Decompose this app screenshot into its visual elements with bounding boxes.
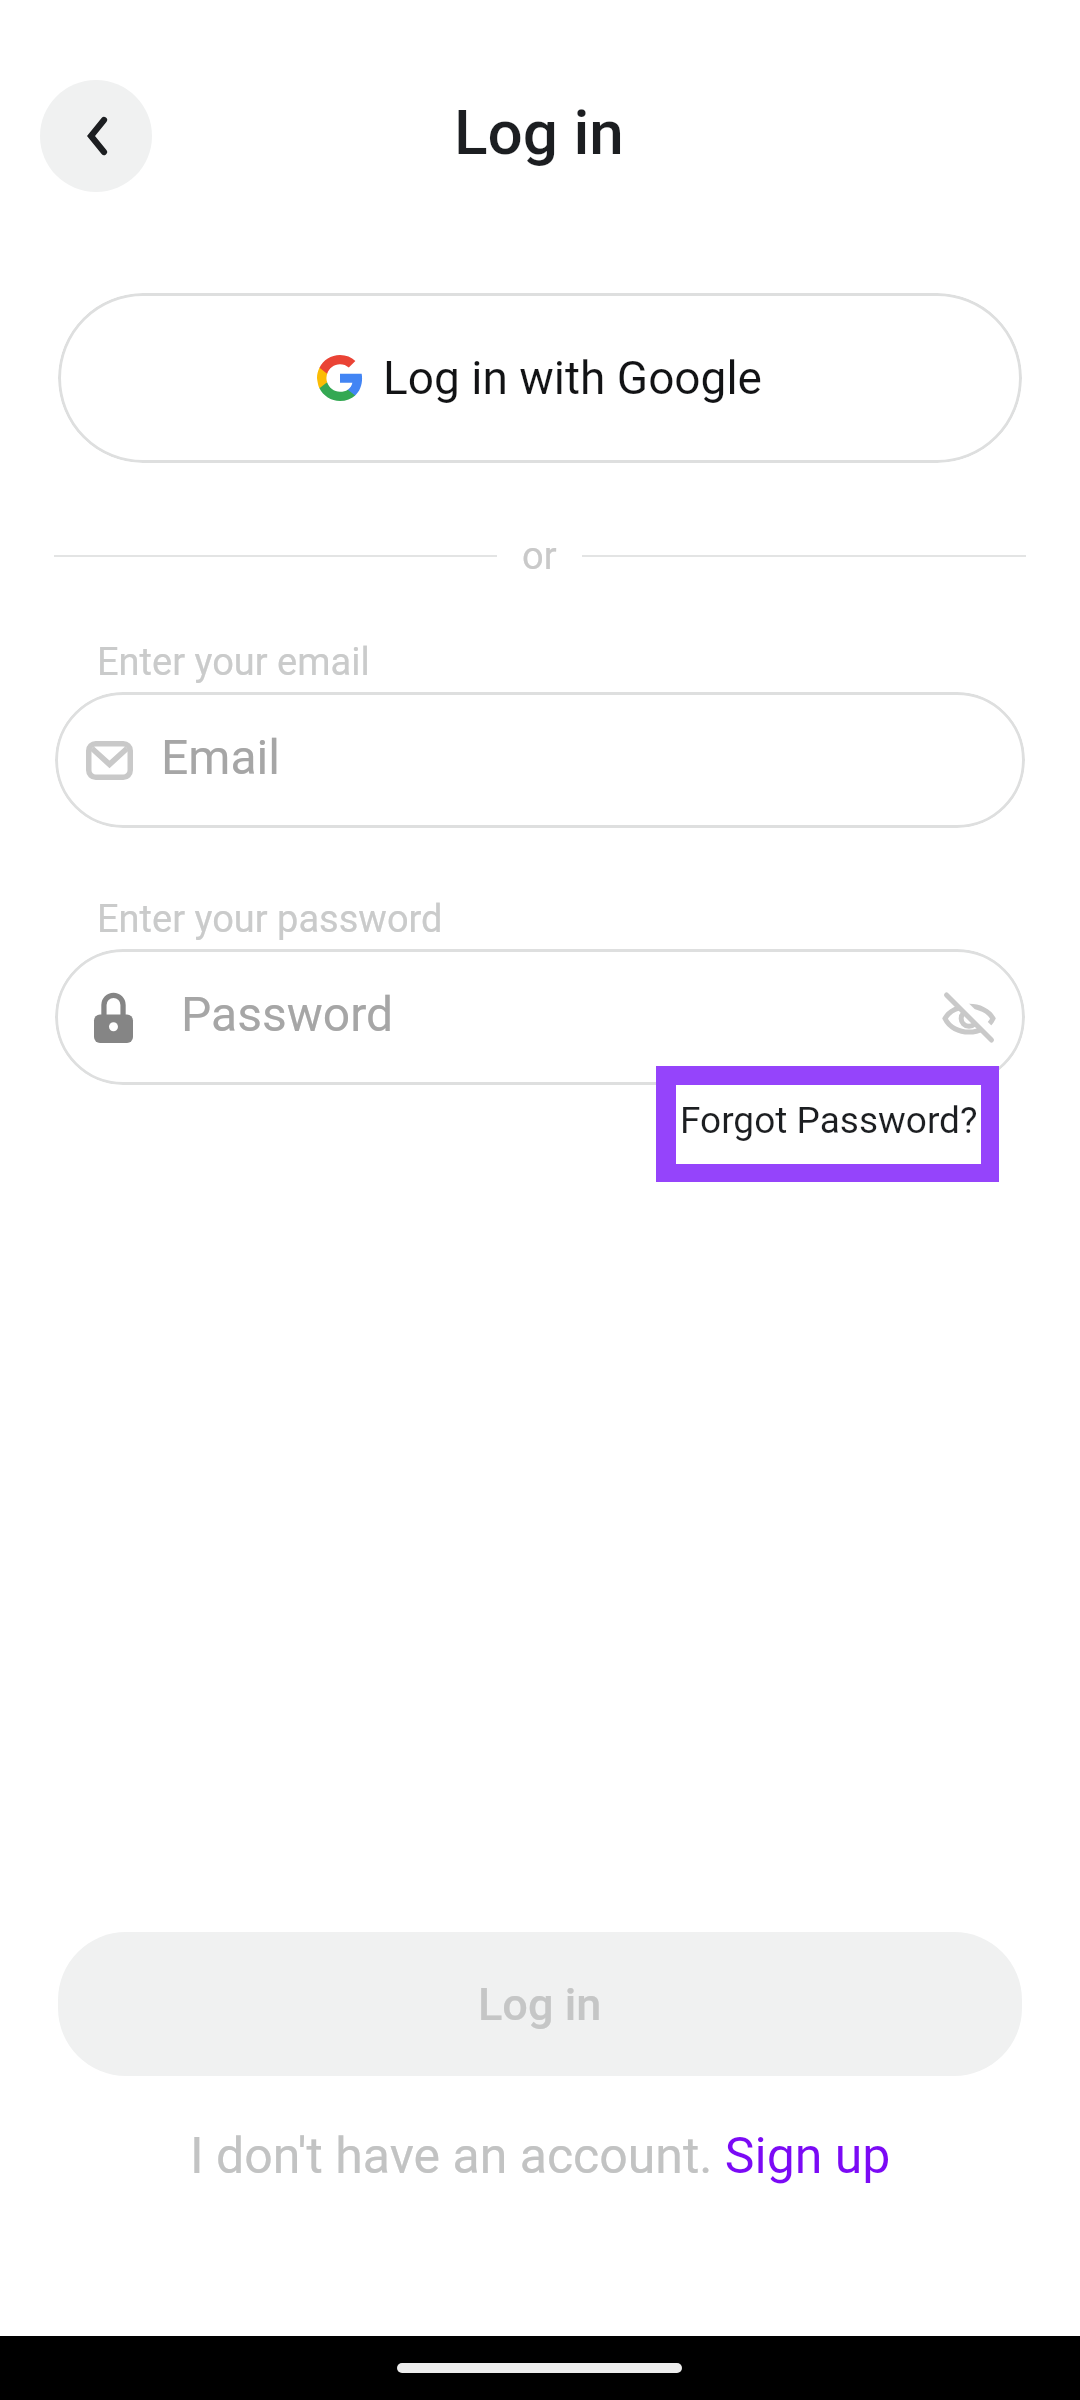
- staticText: Log in: [454, 96, 624, 169]
- button[interactable]: Log in with Google: [58, 293, 1022, 463]
- staticText: Forgot Password?: [680, 1099, 978, 1142]
- staticText: Enter your email: [97, 640, 370, 685]
- staticText: Password: [181, 986, 394, 1042]
- button[interactable]: Email: [55, 692, 1025, 828]
- staticText: Log in with Google: [383, 351, 763, 405]
- staticText: Log in: [478, 1978, 602, 2031]
- button[interactable]: Back: [40, 80, 152, 192]
- staticText: or: [522, 534, 557, 578]
- button[interactable]: Log in: [58, 1932, 1022, 2076]
- button[interactable]: Forgot Password?: [676, 1085, 981, 1164]
- button[interactable]: Show password: [939, 987, 999, 1047]
- staticText: Enter your password: [97, 897, 443, 942]
- button[interactable]: Password: [55, 949, 1025, 1085]
- staticText: Email: [161, 729, 280, 785]
- button[interactable]: I don't have an account. Sign up: [190, 2127, 891, 2186]
- staticText: I don't have an account. Sign up: [190, 2127, 891, 2186]
